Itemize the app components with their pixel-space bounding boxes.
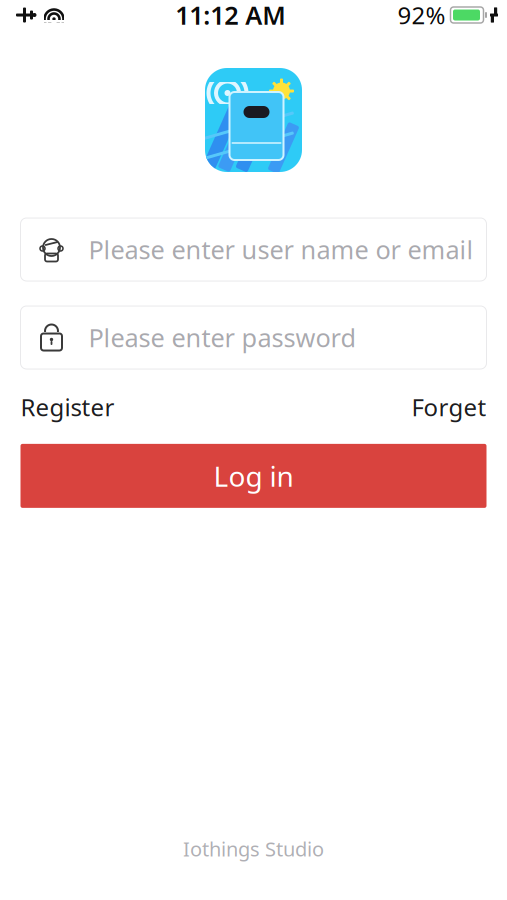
button[interactable]: Please enter user name or email xyxy=(20,218,486,281)
staticText: Please enter password xyxy=(88,321,356,354)
staticText: Iothings Studio xyxy=(183,835,324,862)
button[interactable]: Log in xyxy=(20,444,486,508)
button[interactable]: Forget xyxy=(411,391,486,423)
button[interactable]: Register xyxy=(20,391,114,423)
staticText: Please enter user name or email xyxy=(88,233,473,266)
staticText: 92% xyxy=(397,0,445,31)
staticText: Register xyxy=(20,391,114,423)
staticText: 11:12 AM xyxy=(175,0,286,32)
staticText: Forget xyxy=(411,391,486,423)
button[interactable]: Please enter password xyxy=(20,306,486,369)
staticText: Log in xyxy=(213,457,293,494)
